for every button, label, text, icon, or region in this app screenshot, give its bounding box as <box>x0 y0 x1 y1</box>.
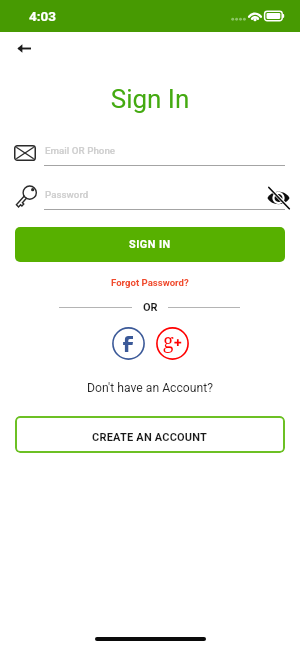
staticText: Sign In <box>0 84 300 114</box>
button[interactable]: Back <box>8 32 40 64</box>
staticText: SIGN IN <box>129 238 171 251</box>
button[interactable]: Sign in with Google Plus <box>155 326 189 360</box>
staticText: Don't have an Account? <box>87 381 214 395</box>
staticText: Email OR Phone <box>45 145 116 156</box>
staticText: Password <box>45 189 89 200</box>
staticText: OR <box>143 301 158 314</box>
staticText: g <box>163 327 174 354</box>
button[interactable]: SIGN IN <box>15 227 285 262</box>
button[interactable]: Sign in with Facebook <box>111 326 145 360</box>
staticText: CREATE AN ACCOUNT <box>92 431 208 444</box>
staticText: 4:03 <box>29 8 57 24</box>
button[interactable]: Show password <box>267 187 290 209</box>
button[interactable]: CREATE AN ACCOUNT <box>15 416 285 453</box>
button[interactable]: Forgot Password? <box>107 276 193 289</box>
